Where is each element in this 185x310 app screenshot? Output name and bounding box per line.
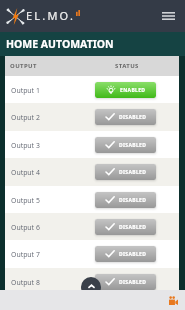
button[interactable]: Scroll to top — [81, 277, 101, 290]
staticText: DISABLED — [119, 224, 147, 231]
button[interactable]: Output 7 — [5, 240, 179, 268]
button[interactable]: Video — [164, 291, 182, 309]
button[interactable]: Output 4 — [5, 158, 179, 186]
button[interactable]: DISABLED — [95, 164, 156, 180]
staticText: Output 1 — [11, 86, 40, 95]
button[interactable]: DISABLED — [95, 274, 156, 290]
staticText: DISABLED — [119, 279, 147, 286]
staticText: EL.MO. — [26, 8, 76, 23]
staticText: DISABLED — [119, 142, 147, 149]
staticText: ENABLED — [120, 87, 146, 94]
button[interactable]: Menu — [160, 8, 176, 24]
button[interactable]: DISABLED — [95, 246, 156, 262]
button[interactable]: DISABLED — [95, 192, 156, 208]
button[interactable]: DISABLED — [95, 137, 156, 153]
staticText: STATUS — [115, 62, 139, 70]
staticText: Output 4 — [11, 168, 40, 177]
button[interactable]: Output 3 — [5, 131, 179, 159]
staticText: Output 7 — [11, 250, 40, 259]
button[interactable]: Output 2 — [5, 103, 179, 131]
staticText: Output 5 — [11, 196, 40, 205]
staticText: DISABLED — [119, 114, 147, 121]
staticText: DISABLED — [119, 197, 147, 204]
button[interactable]: DISABLED — [95, 109, 156, 125]
staticText: DISABLED — [119, 169, 147, 176]
staticText: DISABLED — [119, 251, 147, 258]
button[interactable]: Output 8 — [5, 268, 179, 290]
staticText: Output 3 — [11, 141, 40, 150]
button[interactable]: Output 1 — [5, 76, 179, 104]
staticText: OUTPUT — [10, 62, 37, 70]
button[interactable]: ENABLED — [95, 82, 156, 98]
button[interactable]: DISABLED — [95, 219, 156, 235]
staticText: Output 2 — [11, 113, 40, 122]
button[interactable]: Output 5 — [5, 186, 179, 214]
button[interactable]: Output 6 — [5, 213, 179, 241]
staticText: Output 8 — [11, 278, 40, 287]
staticText: Output 6 — [11, 223, 40, 232]
staticText: HOME AUTOMATION — [6, 37, 114, 51]
